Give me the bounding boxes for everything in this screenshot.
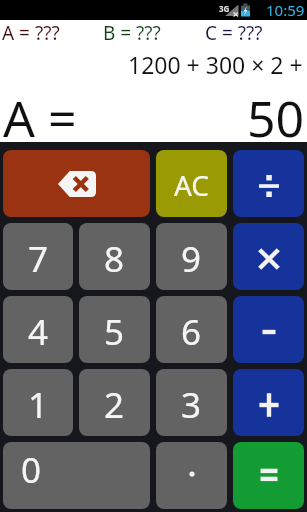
staticText: 4 [28,308,49,356]
button[interactable] [156,442,227,509]
button[interactable]: 8 [79,223,150,290]
staticText: 10:59 [266,0,305,20]
button[interactable]: 3 [156,369,227,436]
button[interactable]: 6 [156,296,227,363]
button[interactable] [3,150,150,217]
staticText: 1 [28,381,49,429]
button[interactable]: 9 [156,223,227,290]
button[interactable]: 1 [3,369,73,436]
button[interactable]: 0 [3,442,150,509]
staticText: 0 [21,446,42,494]
staticText: 6 [181,308,202,356]
staticText: B = ??? [103,20,161,46]
staticText: 8 [104,235,125,283]
staticText: 1200 + 300 × 2 + [128,49,303,80]
staticText: 50 [247,84,305,140]
button[interactable]: 4 [3,296,73,363]
button[interactable] [233,150,304,217]
staticText: 7 [28,235,49,283]
button[interactable] [233,442,304,509]
staticText: A = ??? [2,20,60,46]
staticText: 2 [104,381,125,429]
button[interactable]: AC [156,150,227,217]
button[interactable]: 2 [79,369,150,436]
staticText: AC [174,166,210,204]
staticText: 3G [219,3,230,14]
staticText: 5 [104,308,125,356]
button[interactable]: 7 [3,223,73,290]
button[interactable] [233,369,304,436]
staticText: A = [3,84,77,140]
staticText: 3 [181,381,202,429]
staticText: 9 [181,235,202,283]
staticText: C = ??? [205,20,263,46]
button[interactable]: 5 [79,296,150,363]
button[interactable] [233,223,304,290]
button[interactable] [233,296,304,363]
